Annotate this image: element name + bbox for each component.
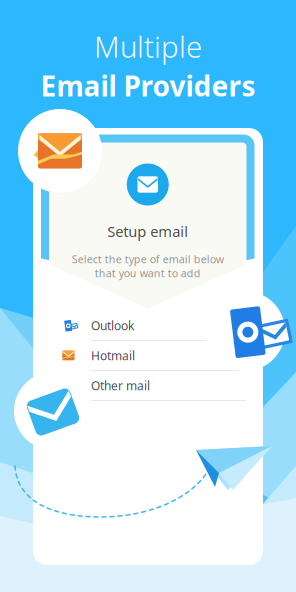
- staticText: Outlook: [91, 317, 134, 333]
- staticText: Multiple: [94, 27, 202, 66]
- staticText: Setup email: [107, 221, 188, 241]
- staticText: Hotmail: [91, 347, 135, 363]
- button[interactable]: Hotmail: [62, 341, 246, 371]
- staticText: that you want to add: [95, 266, 201, 280]
- staticText: Other mail: [91, 377, 150, 393]
- button[interactable]: Other mail: [62, 371, 246, 401]
- staticText: Email Providers: [40, 67, 255, 104]
- button[interactable]: Outlook: [62, 311, 246, 341]
- staticText: Select the type of email below: [72, 252, 224, 266]
